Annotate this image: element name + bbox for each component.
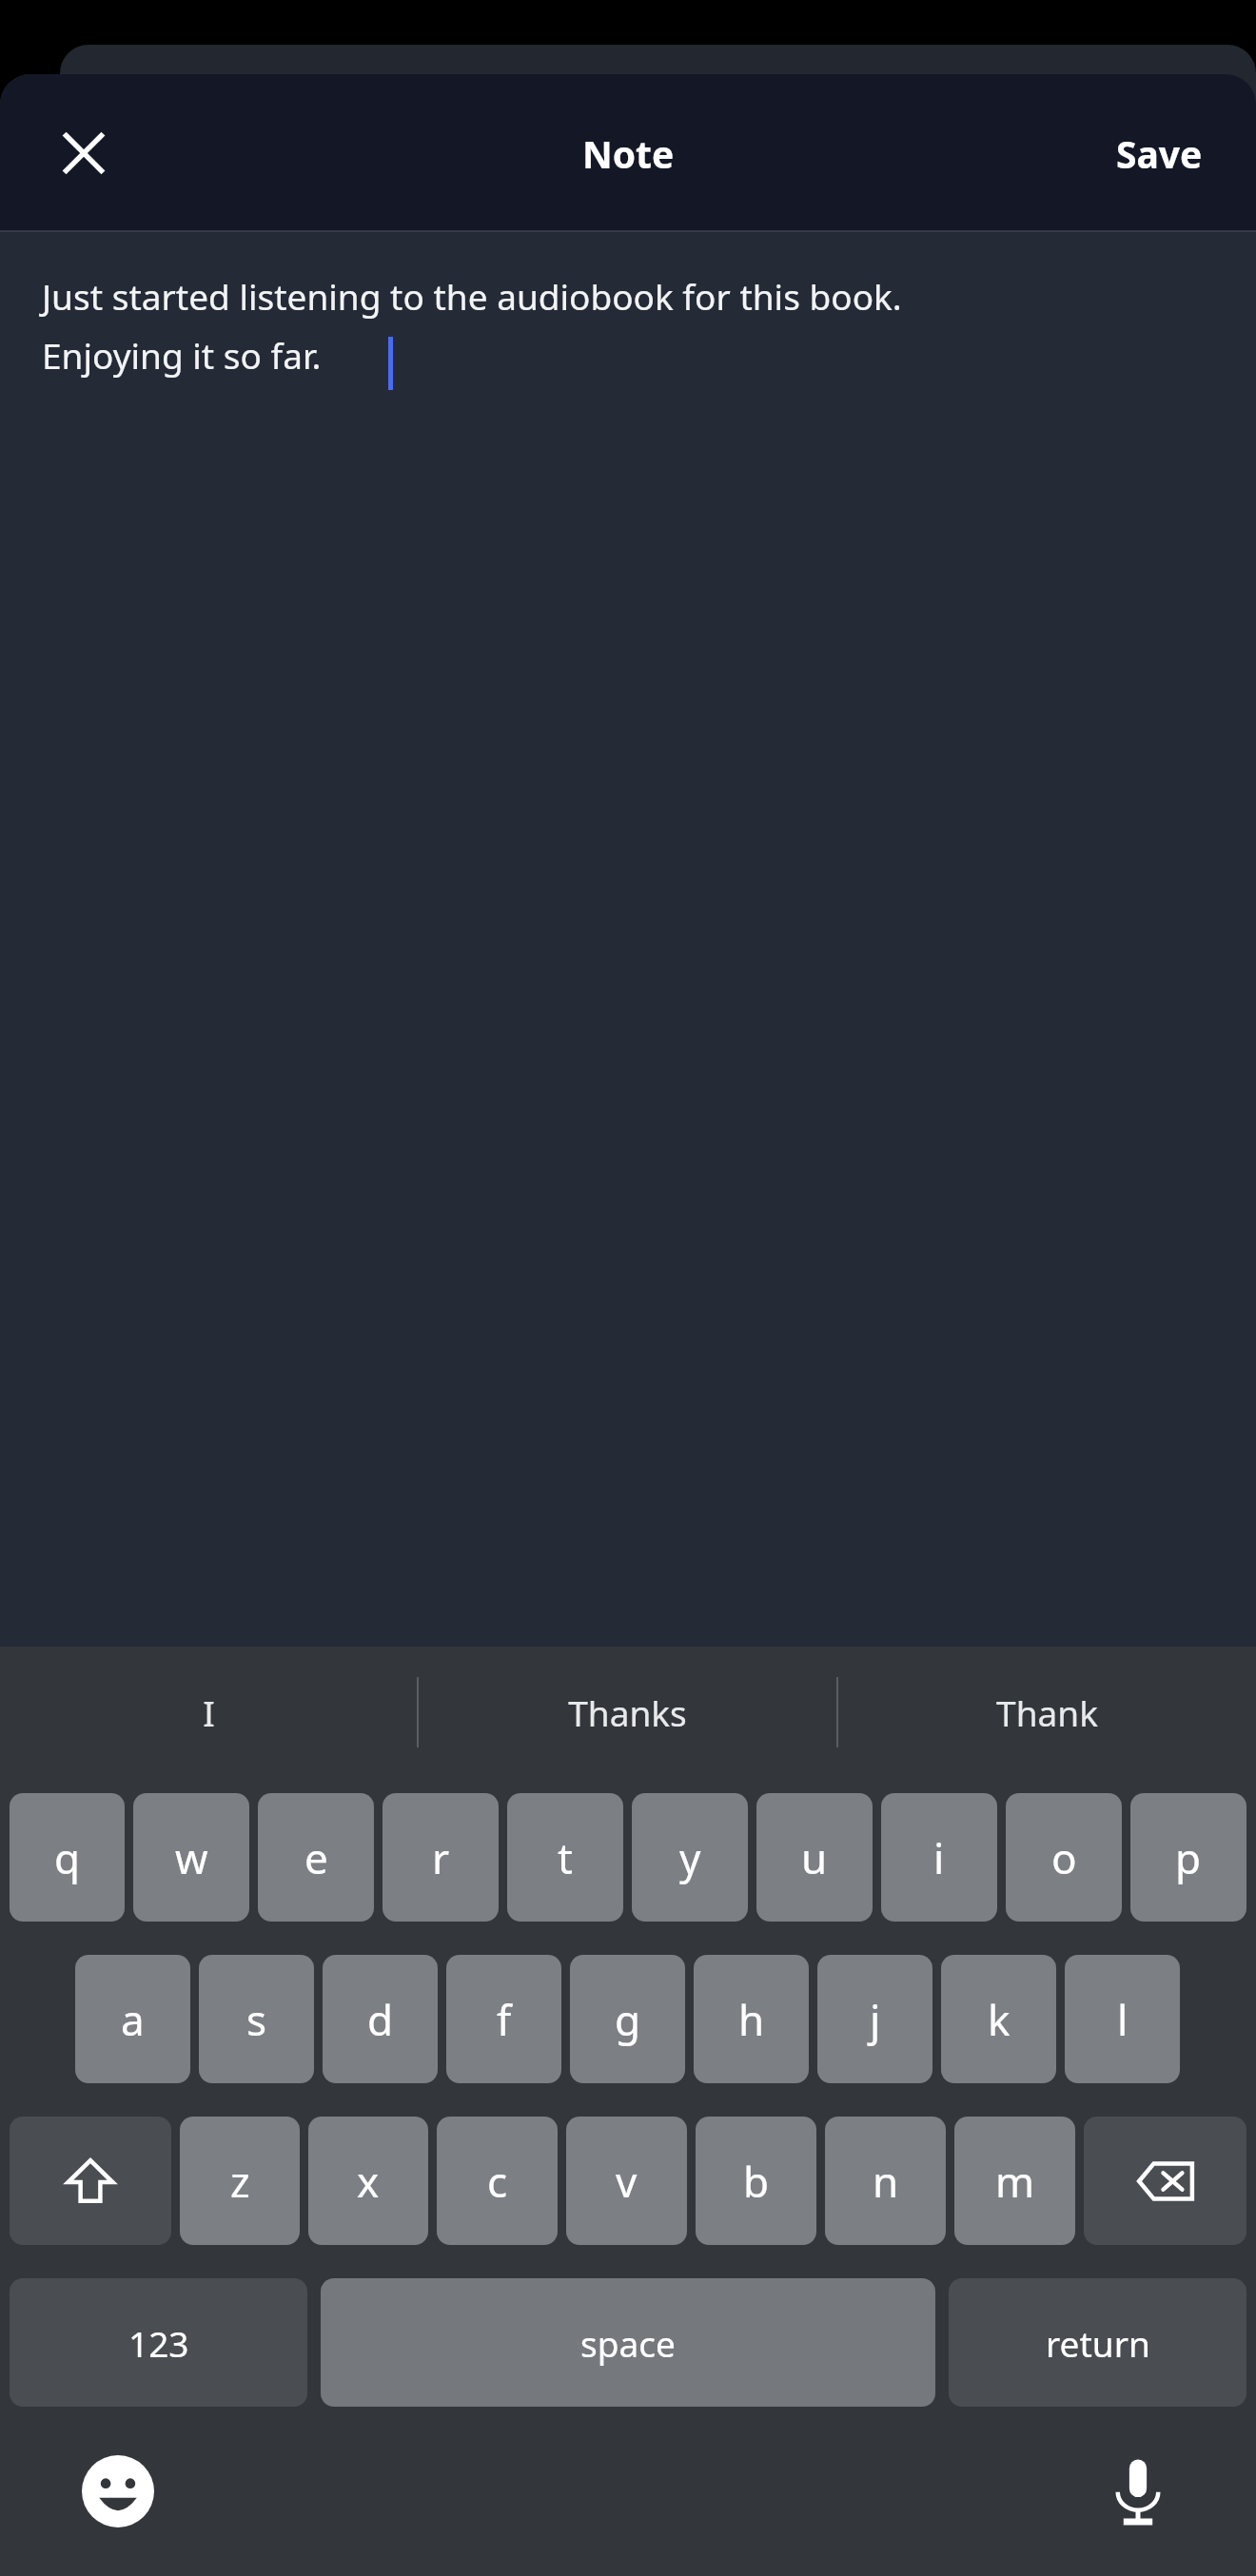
button[interactable]: d <box>323 1955 438 2083</box>
button[interactable]: z <box>180 2117 300 2245</box>
staticText: d <box>367 1991 394 2048</box>
button[interactable]: h <box>694 1955 809 2083</box>
staticText: f <box>497 1991 512 2048</box>
staticText: space <box>580 2319 676 2367</box>
button[interactable]: o <box>1006 1793 1122 1922</box>
staticText: n <box>873 2153 899 2210</box>
staticText: a <box>121 1991 145 2048</box>
staticText: p <box>1175 1829 1202 1886</box>
button[interactable]: v <box>566 2117 687 2245</box>
staticText: k <box>988 1991 1011 2048</box>
staticText: b <box>743 2153 770 2210</box>
staticText: g <box>615 1991 641 2048</box>
button[interactable]: I <box>0 1647 417 1778</box>
staticText: h <box>738 1991 765 2048</box>
button[interactable]: b <box>696 2117 816 2245</box>
staticText: q <box>54 1829 81 1886</box>
staticText: m <box>995 2153 1035 2210</box>
button[interactable]: t <box>507 1793 623 1922</box>
staticText: x <box>357 2153 380 2210</box>
button[interactable]: Thanks <box>419 1647 836 1778</box>
staticText: z <box>230 2153 250 2210</box>
staticText: y <box>679 1829 701 1886</box>
button[interactable]: w <box>133 1793 249 1922</box>
button[interactable]: p <box>1130 1793 1246 1922</box>
button[interactable]: Voice input <box>1092 2446 1184 2537</box>
button[interactable]: e <box>258 1793 374 1922</box>
other: Backspace <box>1136 2152 1195 2211</box>
staticText: s <box>246 1991 267 2048</box>
button[interactable]: s <box>199 1955 314 2083</box>
staticText: j <box>870 1991 881 2048</box>
button[interactable]: f <box>446 1955 561 2083</box>
button[interactable]: return <box>949 2278 1246 2407</box>
staticText: Save <box>1116 128 1203 179</box>
staticText: Note <box>582 128 675 179</box>
button[interactable]: c <box>437 2117 558 2245</box>
staticText: Thanks <box>568 1688 687 1736</box>
other: Shift <box>66 2156 115 2206</box>
button[interactable]: key <box>1084 2117 1246 2245</box>
staticText: 123 <box>128 2319 189 2367</box>
staticText: v <box>616 2153 638 2210</box>
button[interactable]: Emoji <box>72 2446 164 2537</box>
button[interactable]: space <box>321 2278 935 2407</box>
button[interactable]: x <box>308 2117 428 2245</box>
button[interactable]: i <box>881 1793 997 1922</box>
staticText: l <box>1117 1991 1128 2048</box>
button[interactable]: Just started listening to the audiobook … <box>0 232 1256 1647</box>
button[interactable]: l <box>1065 1955 1180 2083</box>
staticText: w <box>175 1829 208 1886</box>
staticText: I <box>203 1688 215 1736</box>
staticText: Thank <box>996 1688 1098 1736</box>
button[interactable]: g <box>570 1955 685 2083</box>
button[interactable]: u <box>756 1793 873 1922</box>
button[interactable]: y <box>632 1793 748 1922</box>
button[interactable]: Close <box>40 109 128 197</box>
staticText: o <box>1051 1829 1077 1886</box>
button[interactable]: 123 <box>10 2278 307 2407</box>
staticText: return <box>1046 2319 1150 2367</box>
button[interactable]: n <box>825 2117 946 2245</box>
staticText: t <box>558 1829 573 1886</box>
button[interactable]: k <box>941 1955 1056 2083</box>
staticText: i <box>933 1829 945 1886</box>
staticText: Just started listening to the audiobook … <box>42 272 902 380</box>
button[interactable]: key <box>10 2117 171 2245</box>
button[interactable]: Save <box>1063 106 1256 202</box>
button[interactable]: a <box>75 1955 190 2083</box>
staticText: u <box>801 1829 828 1886</box>
staticText: e <box>304 1829 328 1886</box>
staticText: c <box>487 2153 508 2210</box>
staticText: r <box>432 1829 450 1886</box>
button[interactable]: r <box>383 1793 499 1922</box>
button[interactable]: m <box>954 2117 1075 2245</box>
button[interactable]: q <box>10 1793 125 1922</box>
button[interactable]: Thank <box>838 1647 1256 1778</box>
button[interactable]: j <box>817 1955 932 2083</box>
